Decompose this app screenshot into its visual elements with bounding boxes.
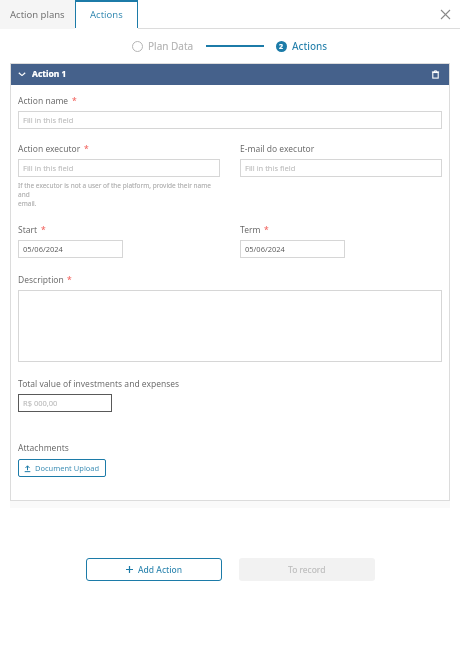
staticText: Action name	[18, 95, 69, 107]
staticText: Description	[18, 274, 64, 286]
staticText: Add Action	[138, 564, 183, 576]
button[interactable]: Close	[431, 0, 460, 29]
staticText: *	[67, 274, 72, 286]
staticText: *	[84, 143, 89, 155]
staticText: Term	[240, 224, 261, 236]
button[interactable]: Actions	[75, 0, 138, 29]
button[interactable]: 05/06/2024	[240, 240, 345, 258]
staticText: Fill in this field	[23, 163, 74, 173]
button[interactable]	[18, 290, 442, 362]
staticText: E-mail do executor	[240, 143, 315, 155]
staticText: Fill in this field	[23, 115, 74, 125]
staticText: Action executor	[18, 143, 81, 155]
staticText: Plan Data	[148, 39, 194, 53]
staticText: Attachments	[18, 442, 69, 454]
staticText: *	[264, 224, 269, 236]
staticText: *	[72, 95, 77, 107]
staticText: Action 1	[32, 68, 67, 80]
staticText: Actions	[90, 8, 123, 21]
button[interactable]: Fill in this field	[18, 159, 220, 177]
staticText: If the executor is not a user of the pla…	[18, 181, 220, 208]
staticText: 05/06/2024	[23, 244, 63, 254]
staticText: 05/06/2024	[245, 244, 285, 254]
button[interactable]: 05/06/2024	[18, 240, 123, 258]
staticText: Actions	[292, 39, 328, 53]
staticText: R$ 000,00	[23, 398, 58, 408]
button[interactable]: To record	[239, 558, 375, 581]
button[interactable]: Delete action	[428, 67, 442, 81]
staticText: Start	[18, 224, 38, 236]
staticText: Fill in this field	[245, 163, 296, 173]
button[interactable]: Action 1	[10, 63, 450, 85]
staticText: Document Upload	[35, 463, 100, 473]
button[interactable]: Add Action	[86, 558, 222, 581]
button[interactable]: 2	[276, 39, 328, 53]
staticText: Action plans	[10, 8, 65, 21]
button[interactable]: Plan Data	[132, 39, 194, 53]
button[interactable]: Fill in this field	[18, 111, 442, 129]
button[interactable]: Fill in this field	[240, 159, 442, 177]
button[interactable]: Action plans	[0, 0, 75, 29]
staticText: To record	[288, 564, 326, 576]
staticText: Total value of investments and expenses	[18, 378, 180, 390]
button[interactable]: R$ 000,00	[18, 394, 112, 412]
button[interactable]: Document Upload	[18, 459, 106, 477]
staticText: *	[41, 224, 46, 236]
staticText: 2	[279, 42, 284, 52]
